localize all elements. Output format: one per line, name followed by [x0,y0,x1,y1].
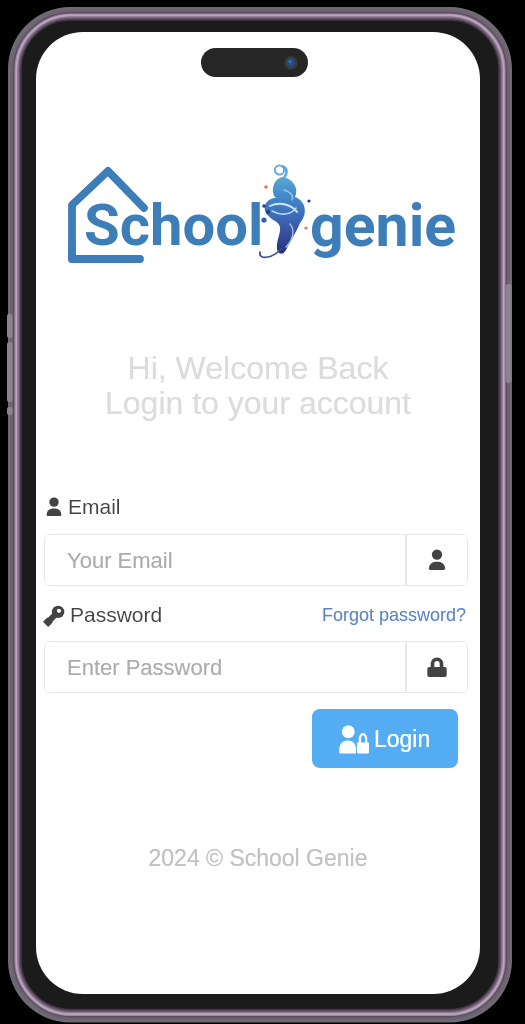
staticText: Enter Password [67,655,223,680]
staticText: 2024 © School Genie [36,845,480,871]
button[interactable]: Login [312,709,458,768]
staticText: Your Email [67,548,173,573]
button[interactable]: Password field [406,641,468,693]
staticText: Email [68,495,121,518]
button[interactable]: Enter Password [44,641,406,693]
staticText: Login [374,726,431,752]
staticText: Password [70,603,163,626]
button[interactable]: Your Email [44,534,406,586]
button[interactable]: Email field [406,534,468,586]
staticText: genie [310,191,457,260]
staticText: School [84,191,264,259]
staticText: Hi, Welcome Back Login to your account [36,350,480,421]
button[interactable]: Forgot password? [318,605,471,625]
staticText: Forgot password? [322,605,467,625]
